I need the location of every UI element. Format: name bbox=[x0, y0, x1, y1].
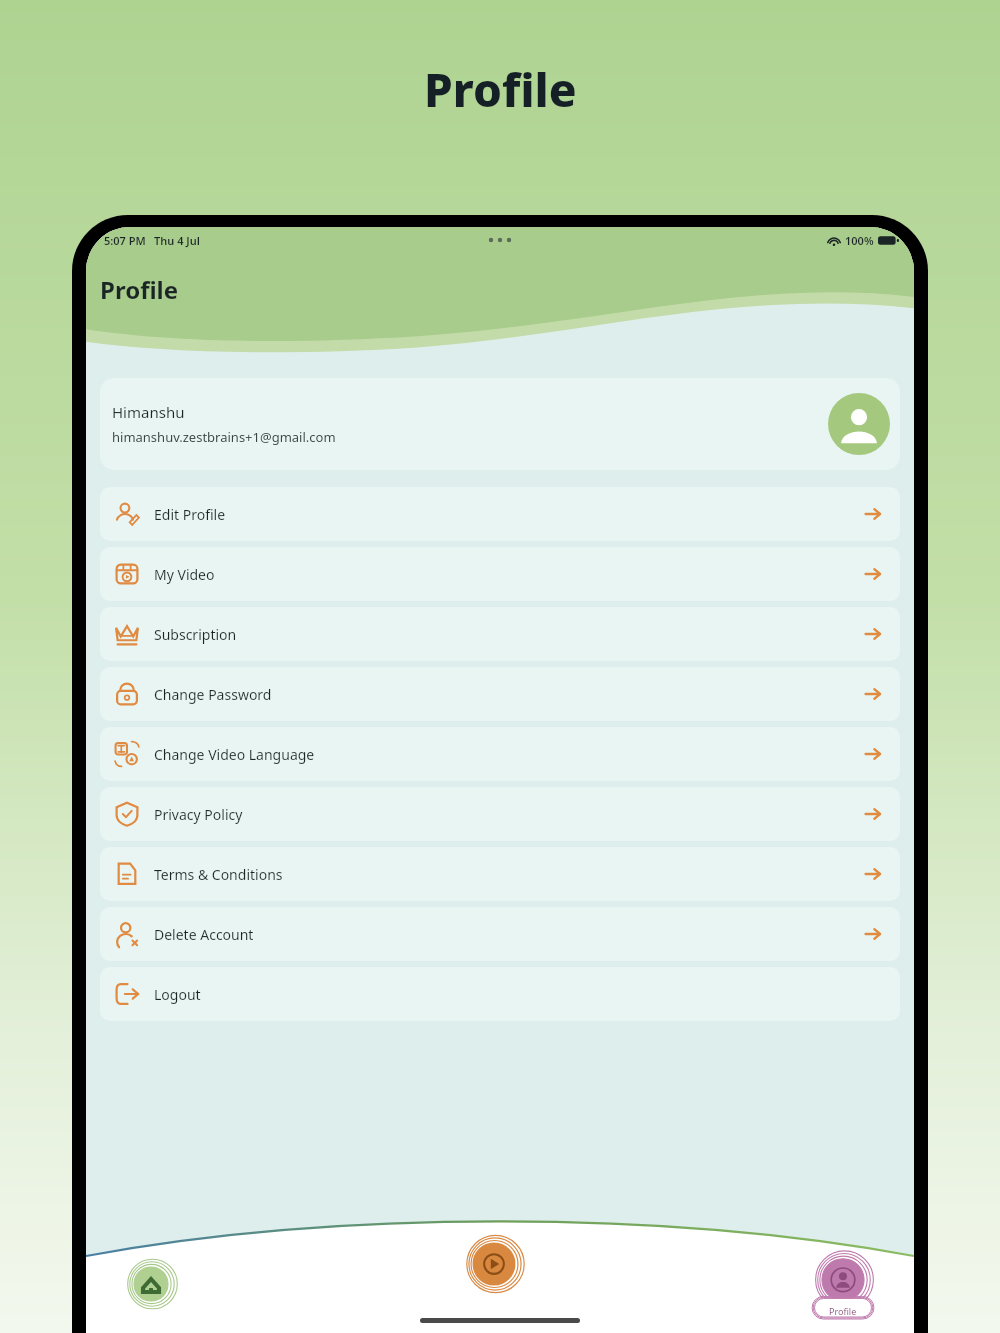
staticText: Delete Account bbox=[154, 925, 254, 944]
button[interactable]: Edit Profile bbox=[100, 487, 900, 541]
button[interactable]: Change Password bbox=[100, 667, 900, 721]
button[interactable]: Profile bbox=[812, 1255, 874, 1321]
button[interactable]: Home bbox=[126, 1259, 176, 1309]
staticText: Privacy Policy bbox=[154, 805, 243, 824]
staticText: Himanshu bbox=[112, 402, 185, 422]
staticText: Thu 4 Jul bbox=[154, 233, 200, 248]
staticText: Profile bbox=[100, 273, 179, 306]
staticText: Terms & Conditions bbox=[154, 865, 283, 884]
button[interactable]: Himanshu bbox=[100, 378, 900, 470]
button[interactable]: Delete Account bbox=[100, 907, 900, 961]
staticText: himanshuv.zestbrains+1@gmail.com bbox=[112, 428, 336, 446]
staticText: Edit Profile bbox=[154, 505, 226, 524]
staticText: Subscription bbox=[154, 625, 237, 644]
button[interactable]: Change Video Language bbox=[100, 727, 900, 781]
button[interactable]: My Video bbox=[100, 547, 900, 601]
button[interactable]: Terms & Conditions bbox=[100, 847, 900, 901]
staticText: Change Password bbox=[154, 685, 272, 704]
button[interactable]: Privacy Policy bbox=[100, 787, 900, 841]
staticText: 5:07 PM bbox=[104, 233, 146, 248]
staticText: 100% bbox=[845, 233, 874, 248]
staticText: My Video bbox=[154, 565, 215, 584]
button[interactable]: Play bbox=[465, 1235, 523, 1293]
staticText: Profile bbox=[424, 58, 577, 121]
staticText: Change Video Language bbox=[154, 745, 315, 764]
staticText: Logout bbox=[154, 985, 201, 1004]
staticText: Profile bbox=[829, 1305, 857, 1317]
button[interactable]: Subscription bbox=[100, 607, 900, 661]
button[interactable]: Logout bbox=[100, 967, 900, 1021]
